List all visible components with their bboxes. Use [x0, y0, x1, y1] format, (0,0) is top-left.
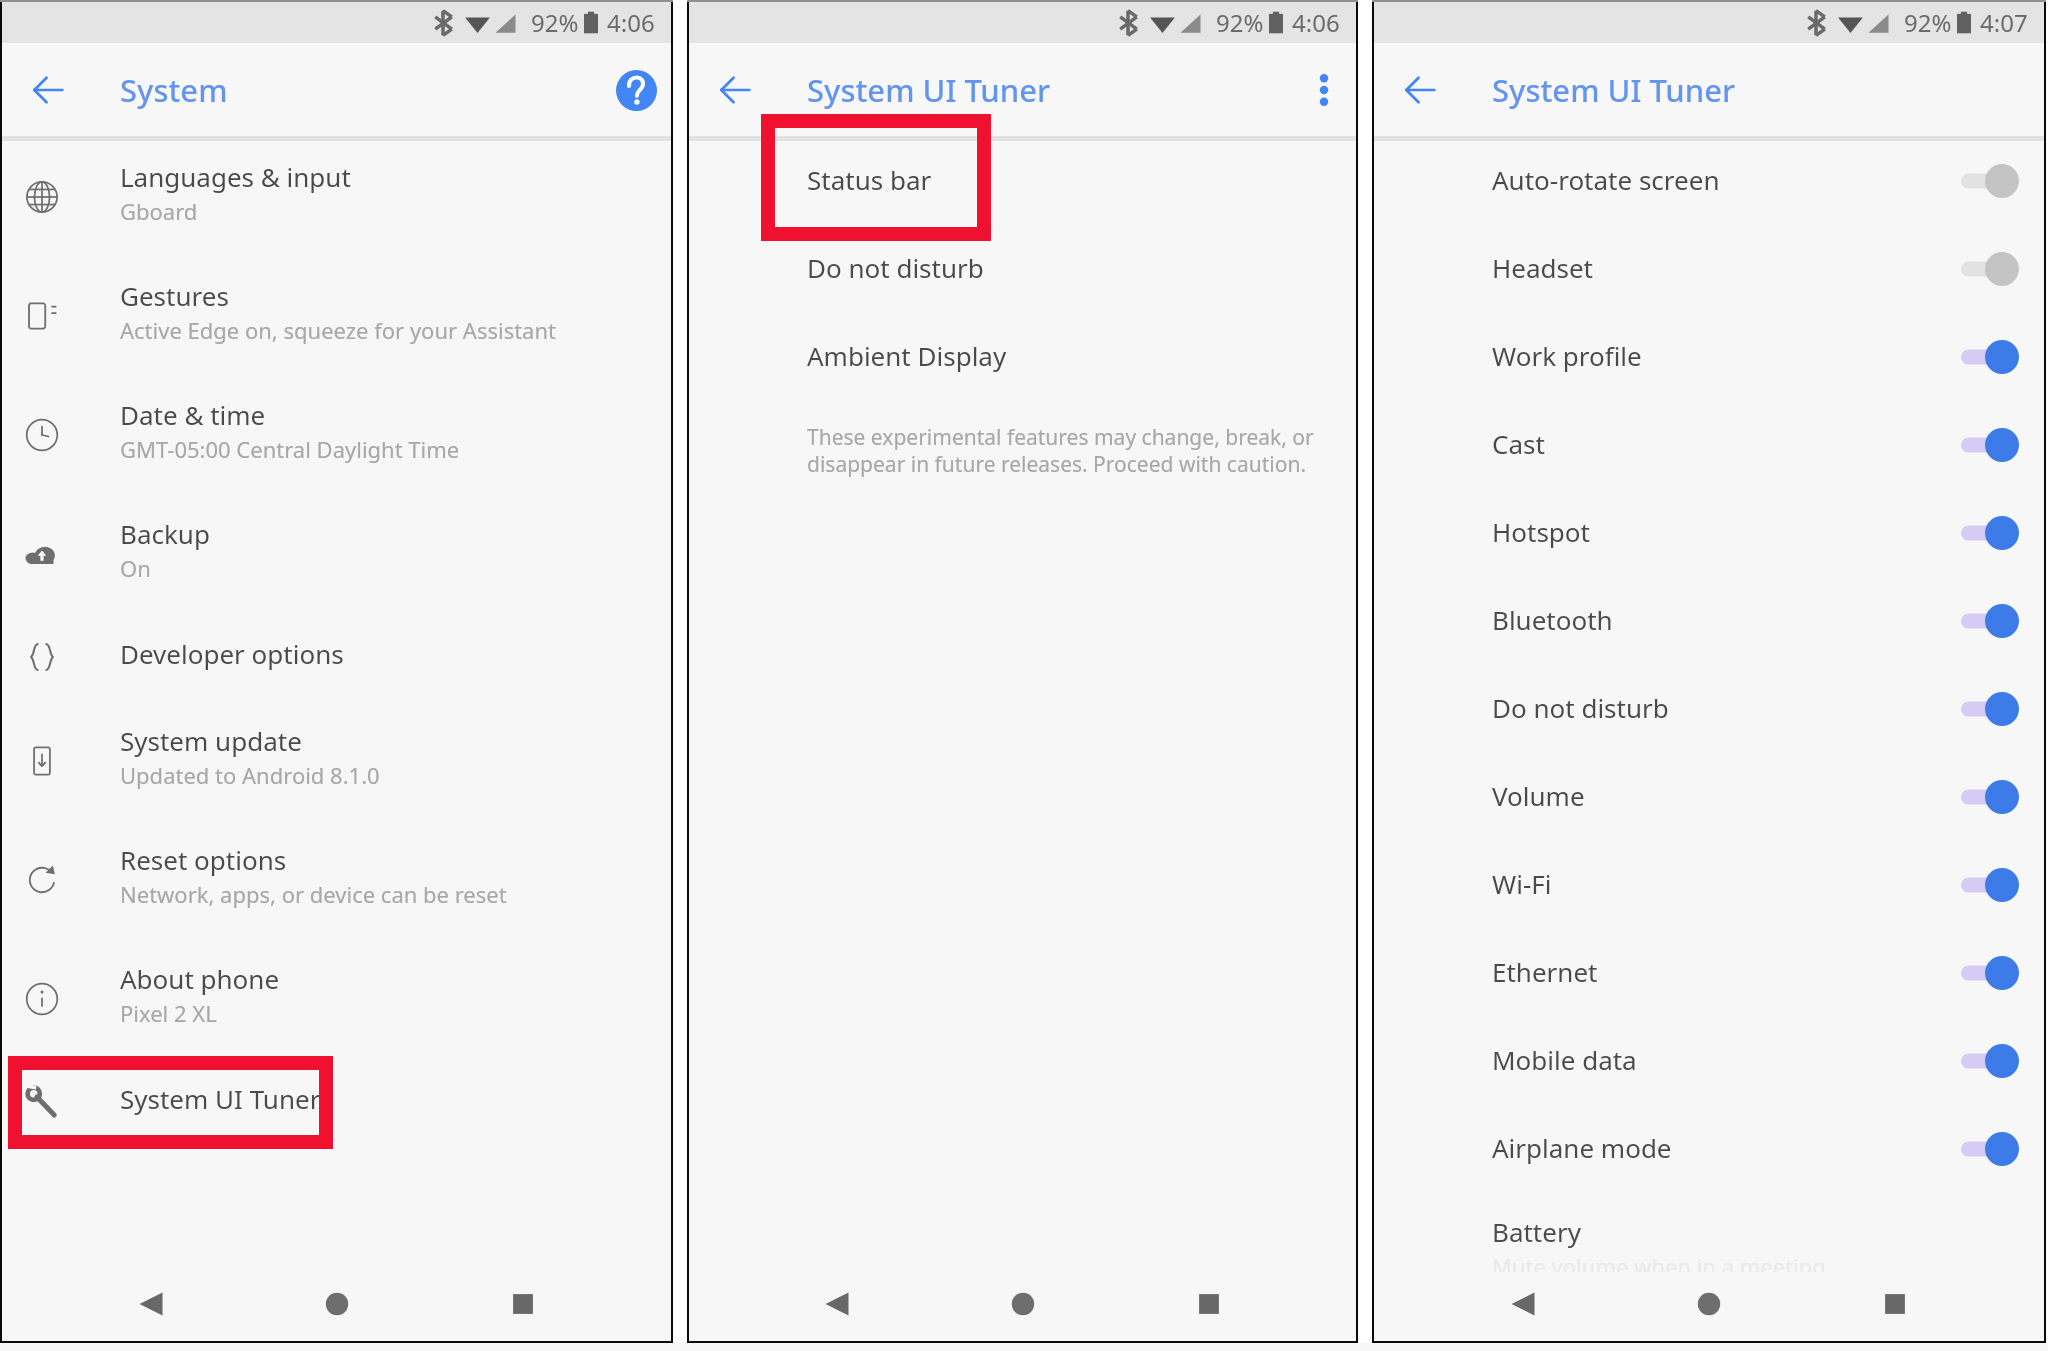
staticText: 4:06 [607, 6, 655, 39]
staticText: GMT-05:00 Central Daylight Time [120, 434, 460, 464]
staticText: 92% [531, 6, 579, 39]
staticText: Date & time [120, 397, 266, 432]
button[interactable]: Wi-Fi on [1954, 859, 2026, 911]
staticText: Do not disturb [807, 250, 984, 285]
button[interactable]: Recents [1116, 1267, 1302, 1341]
staticText: Ambient Display [807, 338, 1007, 373]
staticText: 4:06 [1292, 6, 1340, 39]
button[interactable]: Backup [2, 494, 671, 613]
button[interactable]: Work profile [1374, 313, 2044, 401]
button[interactable]: Headset off [1954, 243, 2026, 295]
button[interactable]: Ambient Display [689, 313, 1356, 401]
staticText: Wi-Fi [1492, 866, 1954, 901]
button[interactable]: Home [1616, 1267, 1802, 1341]
staticText: System update [120, 723, 302, 758]
staticText: 4:07 [1980, 6, 2028, 39]
button[interactable]: Do not disturb [1374, 665, 2044, 753]
staticText: System UI Tuner [120, 1081, 321, 1116]
button[interactable]: Do not disturb [689, 225, 1356, 313]
button[interactable]: Developer options [2, 613, 671, 701]
staticText: Ethernet [1492, 954, 1954, 989]
button[interactable]: Hotspot [1374, 489, 2044, 577]
button[interactable]: Reset options [2, 820, 671, 939]
button[interactable]: Back [1396, 66, 1444, 114]
staticText: System UI Tuner [807, 69, 1051, 111]
button[interactable]: Date & time [2, 375, 671, 494]
staticText: Network, apps, or device can be reset [120, 879, 507, 909]
staticText: Backup [120, 516, 210, 551]
staticText: 92% [1216, 6, 1264, 39]
button[interactable]: Back [1430, 1267, 1616, 1341]
staticText: Bluetooth [1492, 602, 1954, 637]
button[interactable]: Volume on [1954, 771, 2026, 823]
staticText: 92% [1904, 6, 1952, 39]
button[interactable]: Back [744, 1267, 930, 1341]
button[interactable]: Hotspot on [1954, 507, 2026, 559]
button[interactable]: Recents [430, 1267, 616, 1341]
staticText: Cast [1492, 426, 1954, 461]
button[interactable]: Cast on [1954, 419, 2026, 471]
button[interactable]: About phone [2, 939, 671, 1058]
staticText: These experimental features may change, … [807, 423, 1344, 478]
button[interactable]: Gestures [2, 256, 671, 375]
button[interactable]: Bluetooth on [1954, 595, 2026, 647]
staticText: System [120, 69, 228, 111]
staticText: Developer options [120, 636, 344, 671]
button[interactable]: Recents [1802, 1267, 1988, 1341]
button[interactable]: Cast [1374, 401, 2044, 489]
staticText: Updated to Android 8.1.0 [120, 760, 380, 790]
staticText: Work profile [1492, 338, 1954, 373]
button[interactable]: Auto-rotate screen off [1954, 155, 2026, 207]
button[interactable]: Help [612, 66, 660, 114]
button[interactable]: Home [244, 1267, 430, 1341]
staticText: About phone [120, 961, 280, 996]
staticText: Active Edge on, squeeze for your Assista… [120, 315, 556, 345]
button[interactable]: Headset [1374, 225, 2044, 313]
staticText: Pixel 2 XL [120, 998, 217, 1028]
staticText: Battery [1492, 1214, 1581, 1249]
button[interactable]: Work profile on [1954, 331, 2026, 383]
button[interactable]: Auto-rotate screen [1374, 137, 2044, 225]
staticText: Do not disturb [1492, 690, 1954, 725]
staticText: Mobile data [1492, 1042, 1954, 1077]
button[interactable]: More options [1297, 66, 1345, 114]
staticText: Gestures [120, 278, 229, 313]
staticText: Languages & input [120, 159, 351, 194]
staticText: Headset [1492, 250, 1954, 285]
button[interactable]: Languages & input [2, 137, 671, 256]
staticText: On [120, 553, 151, 583]
button[interactable]: Back [58, 1267, 244, 1341]
button[interactable]: Back [24, 66, 72, 114]
staticText: System UI Tuner [1492, 69, 1736, 111]
staticText: Mute volume when in a meeting [1492, 1251, 1826, 1272]
button[interactable]: Mobile data [1374, 1017, 2044, 1105]
button[interactable]: Wi-Fi [1374, 841, 2044, 929]
button[interactable]: Back [711, 66, 759, 114]
staticText: Airplane mode [1492, 1130, 1954, 1165]
staticText: Gboard [120, 196, 198, 226]
button[interactable]: Airplane mode [1374, 1105, 2044, 1193]
button[interactable]: Mobile data on [1954, 1035, 2026, 1087]
button[interactable]: Airplane mode on [1954, 1123, 2026, 1175]
button[interactable]: System UI Tuner [2, 1058, 671, 1146]
staticText: Volume [1492, 778, 1954, 813]
staticText: Reset options [120, 842, 287, 877]
staticText: Auto-rotate screen [1492, 162, 1954, 197]
button[interactable]: Volume [1374, 753, 2044, 841]
button[interactable]: Ethernet [1374, 929, 2044, 1017]
button[interactable]: Do not disturb on [1954, 683, 2026, 735]
staticText: Status bar [807, 162, 932, 197]
button[interactable]: System update [2, 701, 671, 820]
button[interactable]: Bluetooth [1374, 577, 2044, 665]
button[interactable]: Ethernet on [1954, 947, 2026, 999]
button[interactable]: Status bar [689, 137, 1356, 225]
button[interactable]: Home [930, 1267, 1116, 1341]
button[interactable]: Battery [1374, 1193, 2044, 1251]
staticText: Hotspot [1492, 514, 1954, 549]
